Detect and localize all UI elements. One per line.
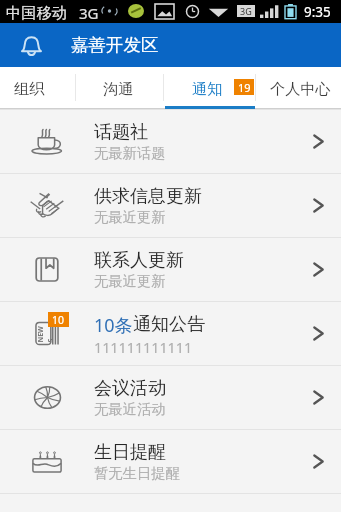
staticText: 生日提醒	[94, 441, 166, 464]
staticText: 通知公告	[133, 313, 205, 336]
button[interactable]: 生日提醒	[0, 430, 341, 493]
staticText: NEWS	[35, 322, 54, 342]
staticText: 组织	[14, 79, 45, 98]
button[interactable]: Notifications	[13, 23, 49, 67]
staticText: 会议活动	[94, 377, 166, 400]
staticText: 3G	[79, 3, 99, 23]
staticText: 供求信息更新	[94, 185, 202, 208]
staticText: 111111111111	[94, 338, 193, 357]
staticText: 话题社	[94, 121, 148, 144]
button[interactable]: 联系人更新	[0, 238, 341, 301]
button[interactable]: 组织	[0, 67, 75, 109]
staticText: 沟通	[103, 79, 134, 98]
staticText: 通知	[192, 79, 223, 98]
button[interactable]: 个人中心	[255, 67, 341, 109]
button[interactable]: 沟通	[75, 67, 163, 109]
staticText: 无最新话题	[94, 144, 166, 162]
staticText: 无最近更新	[94, 272, 166, 290]
staticText: 个人中心	[270, 79, 331, 98]
button[interactable]: 供求信息更新	[0, 174, 341, 237]
staticText: 9:35	[304, 3, 331, 21]
staticText: 嘉善开发区	[71, 34, 159, 56]
button[interactable]: 通知	[163, 67, 255, 109]
button[interactable]: 话题社	[0, 110, 341, 173]
button[interactable]: 会议活动	[0, 366, 341, 429]
staticText: 中国移动	[6, 3, 67, 22]
staticText: 10	[52, 313, 65, 327]
staticText: 无最近活动	[94, 400, 166, 418]
staticText: 无最近更新	[94, 208, 166, 226]
staticText: 3G	[240, 5, 252, 17]
staticText: 暂无生日提醒	[94, 464, 180, 482]
staticText: 19	[238, 80, 251, 95]
staticText: 联系人更新	[94, 249, 184, 272]
staticText: 10条	[94, 313, 133, 338]
button[interactable]: NEWS	[0, 302, 341, 365]
